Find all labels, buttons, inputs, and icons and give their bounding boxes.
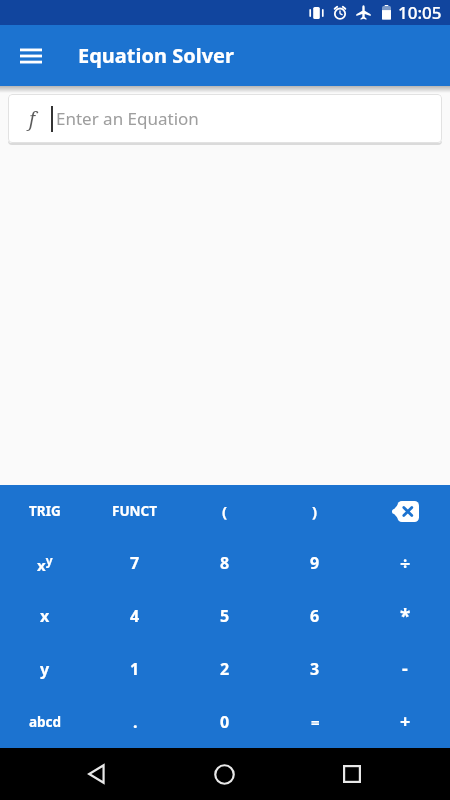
button[interactable]: 6 <box>270 589 360 642</box>
button[interactable] <box>320 748 384 800</box>
button[interactable] <box>0 25 62 86</box>
button[interactable]: . <box>90 695 180 748</box>
button[interactable]: ÷ <box>360 537 450 589</box>
button[interactable]: ( <box>180 485 270 537</box>
button[interactable]: TRIG <box>0 485 90 537</box>
staticText: TRIG <box>29 502 61 520</box>
button[interactable]: y <box>0 642 90 695</box>
staticText: xy <box>37 552 53 575</box>
button[interactable]: FUNCT <box>90 485 180 537</box>
staticText: 8 <box>220 552 230 574</box>
button[interactable] <box>192 748 256 800</box>
staticText: f <box>29 106 36 132</box>
button[interactable]: 2 <box>180 642 270 695</box>
button[interactable]: 9 <box>270 537 360 589</box>
button[interactable]: 7 <box>90 537 180 589</box>
button[interactable]: 1 <box>90 642 180 695</box>
staticText: * <box>400 603 411 629</box>
staticText: 2 <box>220 658 230 680</box>
staticText: = <box>311 712 320 732</box>
staticText: 10:05 <box>398 1 442 24</box>
button[interactable]: x <box>0 589 90 642</box>
staticText: + <box>400 709 411 734</box>
button[interactable]: = <box>270 695 360 748</box>
staticText: - <box>402 656 408 681</box>
button[interactable]: 8 <box>180 537 270 589</box>
button[interactable]: 0 <box>180 695 270 748</box>
staticText: 9 <box>310 552 320 574</box>
staticText: ) <box>312 501 318 521</box>
button[interactable]: 5 <box>180 589 270 642</box>
staticText: 1 <box>130 658 140 680</box>
button[interactable]: abcd <box>0 695 90 748</box>
button[interactable]: * <box>360 589 450 642</box>
staticText: ( <box>222 501 228 521</box>
staticText: Equation Solver <box>78 42 234 69</box>
staticText: x <box>40 605 50 627</box>
staticText: 6 <box>310 605 320 627</box>
staticText: FUNCT <box>112 502 158 520</box>
button[interactable]: 4 <box>90 589 180 642</box>
button[interactable]: - <box>360 642 450 695</box>
staticText: 3 <box>310 658 320 680</box>
staticText: 4 <box>130 605 140 627</box>
button[interactable]: ) <box>270 485 360 537</box>
button[interactable]: 3 <box>270 642 360 695</box>
button[interactable]: + <box>360 695 450 748</box>
button[interactable]: xy <box>0 537 90 589</box>
button[interactable] <box>65 748 129 800</box>
staticText: Enter an Equation <box>56 107 199 130</box>
staticText: ÷ <box>400 551 411 576</box>
staticText: 5 <box>220 605 230 627</box>
button[interactable]: f <box>8 94 442 143</box>
button[interactable] <box>360 485 450 537</box>
staticText: . <box>133 711 138 733</box>
staticText: abcd <box>29 713 62 731</box>
staticText: 7 <box>130 552 140 574</box>
staticText: 0 <box>220 711 230 733</box>
staticText: y <box>40 658 50 680</box>
